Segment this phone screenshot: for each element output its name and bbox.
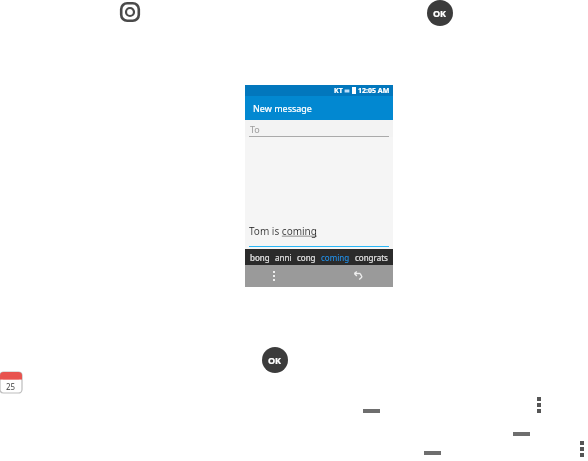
button[interactable]: Calendar bbox=[0, 370, 24, 394]
button[interactable]: More bbox=[577, 441, 587, 461]
staticText: OK bbox=[433, 7, 447, 19]
button[interactable]: Back bbox=[351, 269, 365, 283]
button[interactable]: coming bbox=[321, 252, 350, 263]
staticText: 12:05 AM bbox=[358, 86, 390, 96]
staticText: congrats bbox=[355, 252, 388, 263]
button[interactable]: To bbox=[245, 120, 393, 137]
button[interactable]: cong bbox=[297, 252, 316, 263]
button[interactable]: OK bbox=[262, 347, 288, 373]
staticText: coming bbox=[321, 252, 350, 263]
button[interactable]: bong bbox=[250, 252, 270, 263]
staticText: OK bbox=[268, 354, 282, 366]
button[interactable]: Menu bbox=[269, 269, 279, 283]
staticText: New message bbox=[253, 102, 312, 114]
staticText: bong bbox=[250, 252, 270, 263]
staticText: KT bbox=[334, 86, 343, 96]
button[interactable]: More options bbox=[534, 397, 544, 417]
staticText: cong bbox=[297, 252, 316, 263]
staticText: anni bbox=[275, 252, 292, 263]
button[interactable]: Capture bbox=[118, 0, 142, 24]
button[interactable]: anni bbox=[275, 252, 292, 263]
staticText: 25 bbox=[6, 381, 16, 392]
staticText: To bbox=[250, 123, 260, 135]
button[interactable]: OK bbox=[427, 0, 453, 26]
staticText: Tom is coming bbox=[249, 224, 317, 238]
button[interactable]: Tom is coming bbox=[245, 137, 393, 249]
button[interactable]: congrats bbox=[355, 252, 388, 263]
button[interactable]: New message bbox=[245, 96, 393, 120]
